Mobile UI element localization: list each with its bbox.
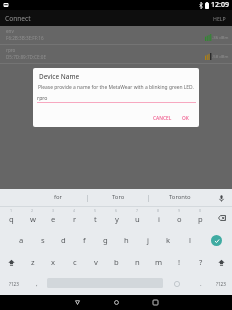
staticText: k [166, 235, 171, 245]
staticText: h [124, 235, 129, 245]
button[interactable]: h [116, 229, 137, 251]
staticText: l [189, 235, 191, 245]
staticText: s [41, 235, 45, 245]
staticText: 6 [115, 208, 118, 213]
button[interactable]: 2 [22, 207, 43, 229]
button[interactable]: f [74, 229, 95, 251]
staticText: d [61, 235, 66, 245]
button[interactable]: for [28, 189, 88, 207]
staticText: D5:7D:89:7D:CE:0E [6, 54, 46, 60]
button[interactable]: 5 [85, 207, 106, 229]
staticText: HELP [213, 15, 226, 22]
button[interactable]: , [27, 273, 47, 295]
staticText: a [19, 235, 24, 245]
button[interactable]: CANCEL [150, 113, 175, 124]
button[interactable]: ! [169, 251, 190, 273]
staticText: n [135, 257, 140, 267]
staticText: Toronto [169, 193, 191, 201]
staticText: rpro [37, 94, 48, 101]
button[interactable]: Backspace [211, 207, 232, 229]
button[interactable]: z [22, 251, 43, 273]
staticText: 5 [94, 208, 97, 213]
button[interactable]: Emoji [163, 273, 191, 295]
staticText: ?123 [216, 281, 226, 287]
button[interactable]: ? [190, 251, 211, 273]
staticText: m [155, 257, 163, 267]
button[interactable]: 6 [106, 207, 127, 229]
button[interactable]: Shift [211, 251, 232, 273]
button[interactable]: ?123 [210, 273, 232, 295]
staticText: Toro [112, 193, 125, 201]
button[interactable]: x [43, 251, 64, 273]
staticText: Connect [5, 14, 31, 23]
button[interactable]: HELP [207, 12, 232, 25]
button[interactable]: c [64, 251, 85, 273]
button[interactable]: 7 [127, 207, 148, 229]
button[interactable]: Home [97, 295, 136, 310]
button[interactable]: j [137, 229, 158, 251]
staticText: e [51, 214, 56, 224]
button[interactable]: 0 [190, 207, 211, 229]
button[interactable]: k [158, 229, 179, 251]
staticText: o [177, 214, 182, 224]
staticText: q [9, 214, 14, 224]
button[interactable]: l [179, 229, 200, 251]
staticText: 4 [73, 208, 76, 213]
button[interactable]: b [106, 251, 127, 273]
staticText: z [31, 257, 35, 267]
button[interactable]: v [85, 251, 106, 273]
button[interactable]: 9 [169, 207, 190, 229]
staticText: w [30, 214, 36, 224]
button[interactable]: m [148, 251, 169, 273]
button[interactable]: 3 [43, 207, 64, 229]
button[interactable]: env [0, 26, 232, 44]
button[interactable]: Shift [0, 251, 22, 273]
staticText: 9 [178, 208, 181, 213]
button[interactable]: g [95, 229, 116, 251]
staticText: rpro [6, 47, 16, 53]
staticText: x [51, 257, 56, 267]
staticText: Device Name [39, 72, 80, 81]
button[interactable]: rpro [0, 45, 232, 63]
staticText: p [198, 214, 203, 224]
staticText: 0 [199, 208, 202, 213]
button[interactable]: 8 [148, 207, 169, 229]
staticText: b [114, 257, 119, 267]
staticText: . [200, 280, 202, 288]
staticText: CANCEL [153, 115, 172, 122]
staticText: u [135, 214, 140, 224]
button[interactable]: 1 [0, 207, 22, 229]
staticText: f [83, 235, 86, 245]
staticText: for [54, 193, 63, 201]
staticText: OK [182, 115, 189, 122]
staticText: 3 [52, 208, 55, 213]
button[interactable]: Recents [136, 295, 175, 310]
button[interactable]: d [53, 229, 74, 251]
staticText: ?123 [9, 281, 19, 287]
button[interactable]: n [127, 251, 148, 273]
staticText: r [73, 214, 77, 224]
staticText: c [73, 257, 77, 267]
staticText: 12:09 [211, 0, 229, 10]
staticText: F6:2B:3B:3E:FF:16 [6, 35, 44, 41]
button[interactable]: OK [180, 113, 191, 124]
staticText: v [94, 257, 98, 267]
staticText: ! [178, 257, 181, 267]
staticText: 2 [31, 208, 34, 213]
button[interactable]: Toro [88, 189, 149, 207]
button[interactable]: ?123 [0, 273, 27, 295]
button[interactable]: Enter [200, 229, 232, 251]
staticText: i [158, 214, 160, 224]
staticText: j [147, 235, 149, 245]
button[interactable]: Toronto [149, 189, 210, 207]
button[interactable]: 4 [64, 207, 85, 229]
button[interactable]: Back [58, 295, 97, 310]
staticText: 7 [136, 208, 139, 213]
staticText: env [6, 28, 14, 34]
button[interactable]: Voice input [210, 189, 232, 207]
button[interactable]: s [32, 229, 53, 251]
staticText: Please provide a name for the MetaWear w… [38, 84, 194, 91]
button[interactable]: a [11, 229, 32, 251]
